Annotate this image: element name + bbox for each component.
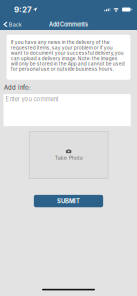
staticText: Enter you comment	[5, 96, 58, 103]
staticText: Add Comments	[49, 21, 88, 28]
staticText: Add Info:	[4, 84, 31, 91]
staticText: If you have any news in the delivery of …	[11, 40, 125, 72]
staticText: Back	[9, 21, 22, 28]
button[interactable]: Back	[0, 19, 26, 30]
staticText: Take Photo	[55, 155, 83, 161]
staticText: 9:27	[14, 5, 32, 14]
button[interactable]: Take Photo	[0, 126, 137, 179]
button[interactable]: SUBMIT	[34, 195, 103, 207]
staticText: SUBMIT	[57, 197, 80, 205]
